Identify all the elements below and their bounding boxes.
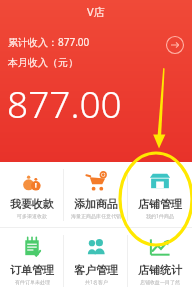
button[interactable]: 我要收款 bbox=[0, 162, 64, 227]
staticText: 添加商品 bbox=[74, 197, 118, 211]
staticText: 我的1件商品 bbox=[146, 213, 174, 220]
staticText: 有件订单未处理 bbox=[15, 279, 50, 285]
button[interactable]: 店铺统计 bbox=[128, 228, 192, 293]
button[interactable]: 客户管理 bbox=[64, 228, 128, 293]
button[interactable]: 添加商品 bbox=[64, 162, 128, 227]
staticText: 店铺收益一目了然 bbox=[140, 279, 180, 285]
staticText: 可多渠道收款 bbox=[17, 213, 47, 219]
button[interactable]: 更多 bbox=[165, 35, 185, 55]
staticText: 本月收入（元） bbox=[8, 56, 78, 69]
button[interactable]: 店铺管理 bbox=[128, 162, 192, 227]
staticText: 海量正商品库任意代销 bbox=[71, 213, 121, 219]
staticText: 累计收入：877.00 bbox=[8, 35, 90, 49]
staticText: V店 bbox=[87, 4, 105, 19]
staticText: 订单管理 bbox=[10, 263, 54, 277]
staticText: 共1名客户 bbox=[85, 279, 108, 286]
staticText: 客户管理 bbox=[74, 263, 118, 277]
staticText: 店铺统计 bbox=[138, 263, 182, 277]
button[interactable]: 订单管理 bbox=[0, 228, 64, 293]
staticText: 我要收款 bbox=[10, 197, 54, 211]
staticText: 店铺管理 bbox=[138, 197, 182, 211]
staticText: 877.00 bbox=[7, 78, 122, 128]
